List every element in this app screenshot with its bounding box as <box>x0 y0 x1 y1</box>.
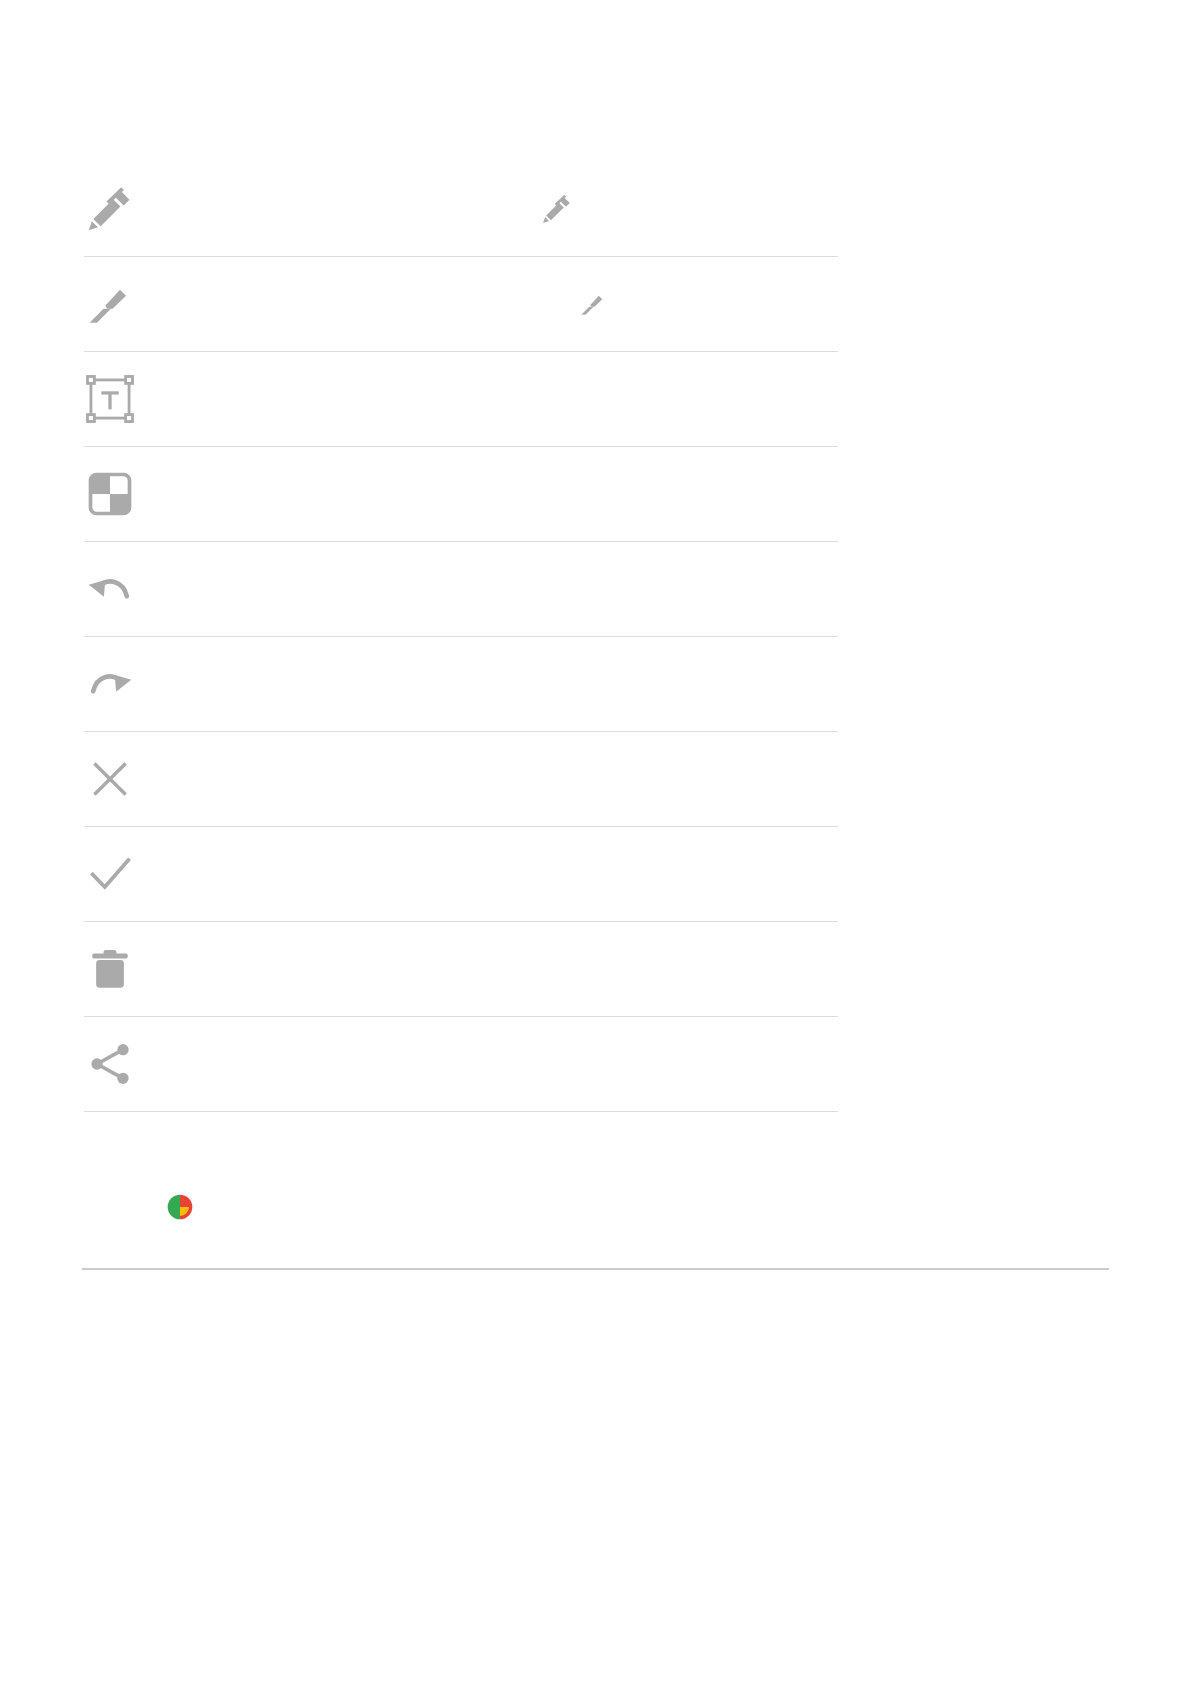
button[interactable]: Pen <box>0 162 1191 256</box>
button[interactable]: Close <box>0 732 1191 826</box>
button[interactable]: Crop <box>0 447 1191 541</box>
button[interactable]: Done <box>0 827 1191 921</box>
button[interactable]: Undo <box>0 542 1191 636</box>
button[interactable]: Share <box>0 1017 1191 1111</box>
button[interactable]: Google Photos <box>0 1172 1191 1242</box>
button[interactable]: Highlighter <box>0 257 1191 351</box>
button[interactable]: Delete <box>0 922 1191 1016</box>
button[interactable]: Redo <box>0 637 1191 731</box>
button[interactable]: Text <box>0 352 1191 446</box>
